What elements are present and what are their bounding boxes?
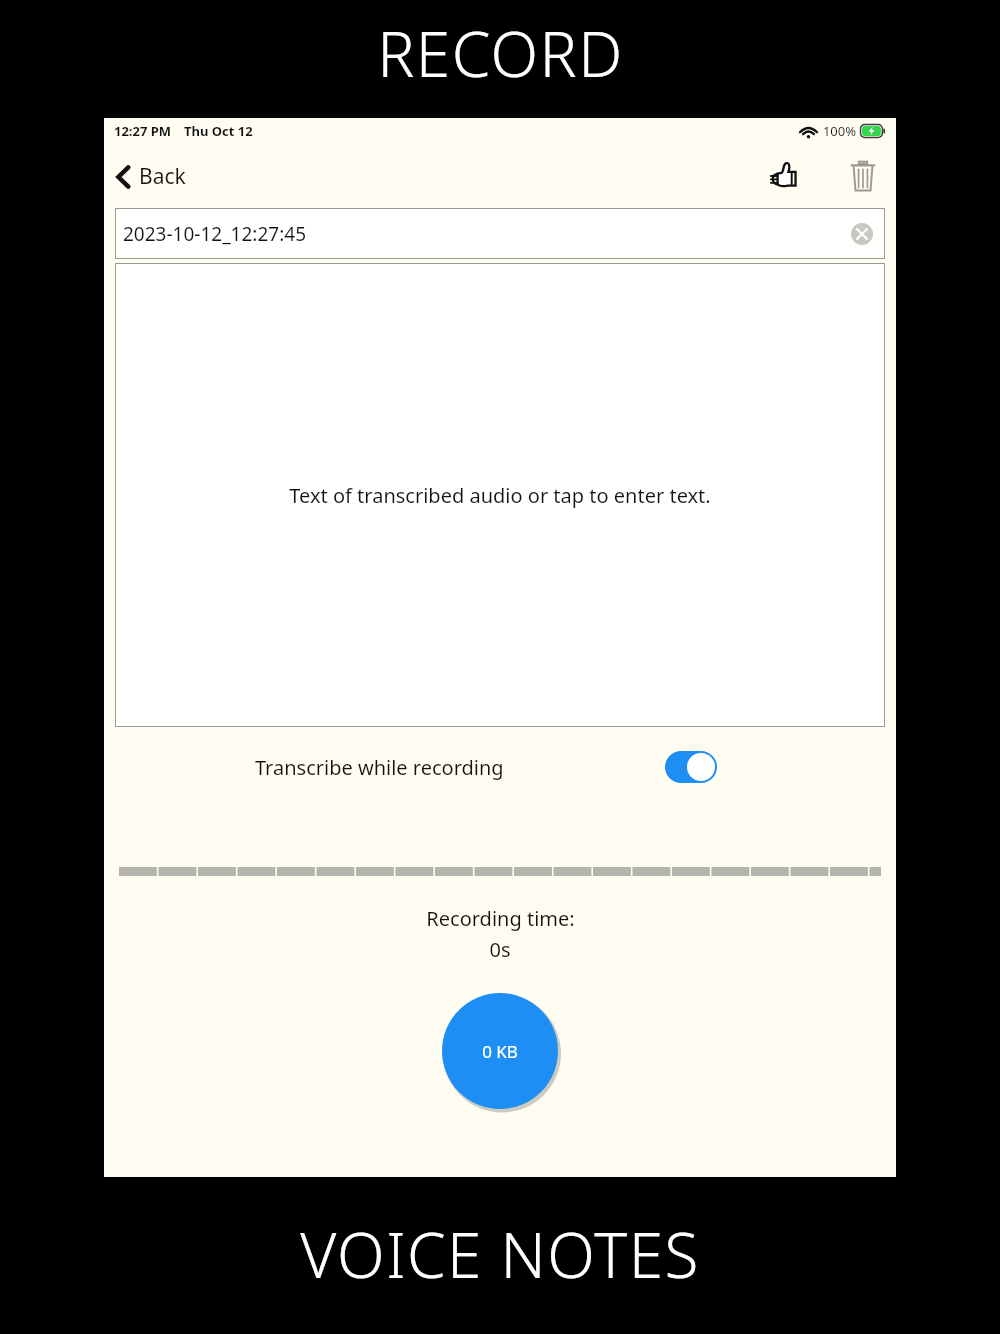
button[interactable]: Text of transcribed audio or tap to ente… bbox=[115, 263, 885, 727]
staticText: Thu Oct 12 bbox=[184, 122, 253, 140]
staticText: Transcribe while recording bbox=[255, 754, 504, 781]
staticText: VOICE NOTES bbox=[300, 1212, 700, 1296]
button[interactable]: Transcribe while recording toggle bbox=[665, 751, 717, 783]
staticText: Back bbox=[139, 162, 186, 191]
staticText: 2023-10-12_12:27:45 bbox=[123, 221, 307, 247]
staticText: 100% bbox=[822, 122, 856, 140]
staticText: 0s bbox=[489, 936, 511, 963]
button[interactable]: 0 KB bbox=[440, 991, 560, 1111]
staticText: Text of transcribed audio or tap to ente… bbox=[289, 482, 711, 509]
staticText: 12:27 PM bbox=[114, 122, 172, 140]
button[interactable]: 2023-10-12_12:27:45 bbox=[115, 208, 885, 259]
button[interactable]: Delete bbox=[838, 151, 888, 201]
staticText: 0 KB bbox=[482, 1040, 518, 1063]
button[interactable]: Back bbox=[104, 154, 200, 199]
staticText: RECORD bbox=[377, 11, 624, 95]
staticText: Recording time: bbox=[426, 905, 575, 932]
button[interactable]: Thumbs up bbox=[758, 150, 810, 202]
button[interactable]: Clear bbox=[851, 223, 873, 245]
